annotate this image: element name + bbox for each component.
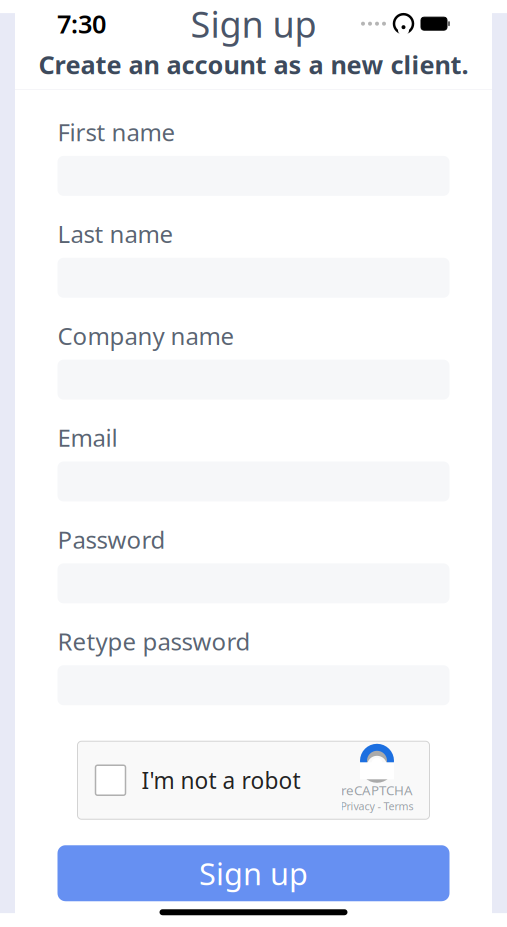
button[interactable]: I'm not a robot reCAPTCHA: [77, 741, 429, 819]
staticText: Sign up: [199, 853, 308, 894]
staticText: Sign up: [190, 0, 316, 48]
staticText: Privacy - Terms: [340, 799, 413, 813]
button[interactable]: Sign up: [57, 845, 449, 901]
staticText: 7:30: [57, 7, 106, 40]
staticText: Create an account as a new client.: [38, 48, 468, 81]
staticText: Email: [57, 422, 117, 453]
staticText: First name: [57, 116, 175, 148]
staticText: I'm not a robot: [141, 765, 300, 795]
staticText: Retype password: [57, 625, 250, 657]
staticText: Last name: [57, 218, 173, 250]
staticText: Password: [57, 523, 165, 555]
staticText: Company name: [57, 320, 234, 352]
staticText: reCAPTCHA: [341, 781, 413, 799]
